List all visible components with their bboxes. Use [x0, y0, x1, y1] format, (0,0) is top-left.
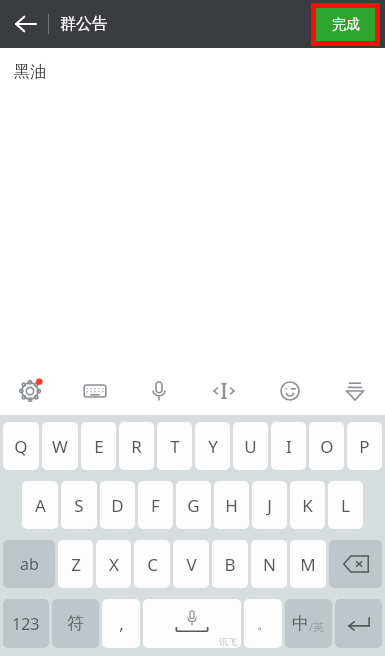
staticText: U: [244, 435, 257, 458]
staticText: T: [170, 435, 180, 458]
staticText: N: [263, 553, 276, 576]
button[interactable]: D: [100, 481, 135, 529]
staticText: P: [359, 435, 370, 458]
staticText: V: [186, 553, 197, 576]
staticText: 。: [257, 616, 270, 632]
button[interactable]: F: [138, 481, 173, 529]
button[interactable]: X: [96, 540, 131, 588]
button[interactable]: H: [214, 481, 249, 529]
button[interactable]: 完成: [316, 8, 375, 41]
button[interactable]: Z: [58, 540, 93, 588]
staticText: 群公告: [60, 14, 108, 34]
staticText: 中: [292, 613, 309, 634]
staticText: O: [320, 435, 334, 458]
button[interactable]: I: [271, 422, 306, 470]
button[interactable]: Delete: [329, 540, 382, 588]
staticText: ,: [119, 612, 124, 635]
staticText: C: [147, 553, 158, 576]
button[interactable]: T: [157, 422, 192, 470]
staticText: Q: [14, 435, 28, 458]
staticText: R: [131, 435, 142, 458]
staticText: ab: [20, 553, 39, 575]
staticText: L: [341, 494, 350, 517]
button[interactable]: 符: [52, 599, 99, 648]
staticText: D: [111, 494, 124, 517]
button[interactable]: B: [212, 540, 248, 588]
staticText: S: [74, 494, 84, 517]
staticText: I: [286, 435, 292, 458]
staticText: H: [225, 494, 238, 517]
staticText: W: [52, 435, 68, 458]
staticText: 黑油: [14, 62, 46, 82]
button[interactable]: O: [309, 422, 344, 470]
button[interactable]: S: [61, 481, 97, 529]
button[interactable]: Voice input: [137, 369, 181, 413]
staticText: 讯飞: [219, 636, 237, 647]
staticText: B: [224, 553, 236, 576]
button[interactable]: J: [252, 481, 287, 529]
button[interactable]: W: [42, 422, 78, 470]
button[interactable]: 中: [285, 599, 332, 648]
button[interactable]: ,: [102, 599, 140, 648]
button[interactable]: Y: [195, 422, 230, 470]
staticText: M: [300, 553, 316, 576]
staticText: F: [151, 494, 160, 517]
staticText: Z: [71, 553, 81, 576]
staticText: 符: [67, 613, 84, 634]
button[interactable]: Emoji: [268, 369, 312, 413]
button[interactable]: U: [233, 422, 268, 470]
button[interactable]: Enter: [335, 599, 382, 648]
staticText: K: [302, 494, 313, 517]
button[interactable]: Back: [6, 4, 46, 44]
button[interactable]: Q: [3, 422, 39, 470]
staticText: E: [94, 435, 104, 458]
button[interactable]: E: [81, 422, 116, 470]
staticText: X: [109, 553, 119, 576]
button[interactable]: N: [251, 540, 287, 588]
button[interactable]: Keyboard: [73, 369, 117, 413]
button[interactable]: M: [290, 540, 326, 588]
button[interactable]: G: [176, 481, 211, 529]
button[interactable]: Settings: [8, 369, 52, 413]
staticText: 完成: [332, 16, 360, 34]
staticText: /英: [309, 619, 325, 634]
button[interactable]: Space: [143, 599, 241, 648]
staticText: A: [35, 494, 46, 517]
button[interactable]: P: [347, 422, 382, 470]
button[interactable]: L: [328, 481, 363, 529]
button[interactable]: Hide keyboard: [333, 369, 377, 413]
staticText: J: [267, 494, 272, 517]
button[interactable]: Move cursor: [202, 369, 246, 413]
button[interactable]: K: [290, 481, 325, 529]
staticText: G: [187, 494, 200, 517]
button[interactable]: C: [134, 540, 170, 588]
button[interactable]: V: [173, 540, 209, 588]
staticText: 123: [12, 613, 40, 635]
staticText: Y: [208, 435, 218, 458]
button[interactable]: R: [119, 422, 154, 470]
button[interactable]: A: [22, 481, 58, 529]
button[interactable]: 。: [244, 599, 282, 648]
button[interactable]: 123: [3, 599, 49, 648]
button[interactable]: ab: [3, 540, 55, 588]
